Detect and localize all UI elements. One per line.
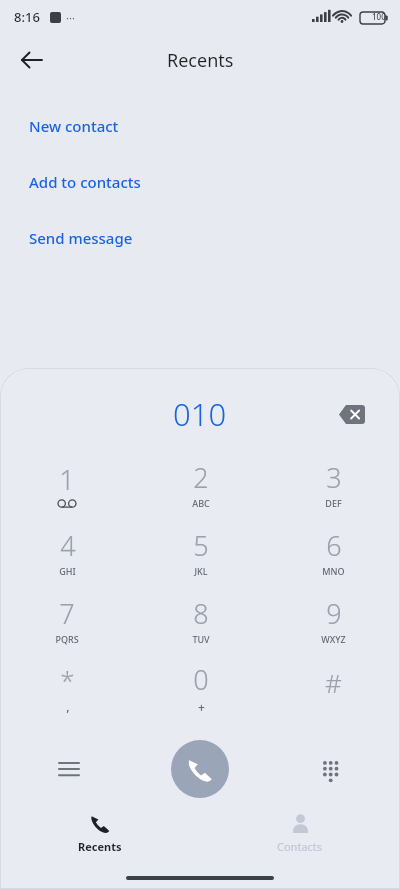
button[interactable]: 2 [134, 450, 267, 518]
staticText: ABC [192, 497, 210, 509]
staticText: New contact [29, 116, 119, 136]
staticText: Recents [78, 839, 122, 854]
staticText: JKL [194, 565, 208, 577]
staticText: 0 [193, 661, 209, 698]
staticText: , [66, 698, 70, 714]
staticText: 010 [173, 393, 227, 435]
button[interactable]: 1 [0, 450, 134, 518]
staticText: 4 [60, 527, 76, 564]
staticText: 2 [193, 459, 209, 496]
staticText: WXYZ [321, 633, 346, 645]
staticText: Contacts [277, 839, 323, 854]
button[interactable]: 3 [267, 450, 400, 518]
staticText: 9 [326, 595, 342, 632]
button[interactable]: 8 [134, 586, 267, 654]
button[interactable]: More options [46, 746, 92, 792]
button[interactable]: 0 [134, 654, 267, 722]
staticText: 7 [59, 595, 75, 632]
button[interactable]: 9 [267, 586, 400, 654]
button[interactable]: * [0, 654, 134, 722]
staticText: 5 [193, 527, 209, 564]
button[interactable]: 5 [134, 518, 267, 586]
button[interactable]: 4 [0, 518, 134, 586]
button[interactable]: 6 [267, 518, 400, 586]
button[interactable]: Call [171, 740, 229, 798]
staticText: TUV [192, 633, 210, 645]
button[interactable]: Send message [0, 224, 400, 252]
staticText: DEF [325, 497, 342, 509]
button[interactable]: Dialpad [308, 746, 354, 792]
button[interactable]: Add to contacts [0, 168, 400, 196]
staticText: 8 [193, 595, 209, 632]
staticText: Send message [29, 228, 133, 248]
staticText: + [198, 699, 205, 715]
staticText: PQRS [55, 633, 79, 645]
staticText: 8:16 [14, 8, 40, 26]
button[interactable]: Recents [0, 806, 200, 868]
button[interactable]: 7 [0, 586, 134, 654]
staticText: GHI [59, 565, 76, 577]
staticText: * [60, 662, 75, 697]
button[interactable]: # [267, 654, 400, 722]
staticText: Add to contacts [29, 172, 141, 192]
staticText: Recents [167, 48, 234, 73]
staticText: 6 [326, 527, 342, 564]
staticText: 100 [372, 11, 386, 22]
button[interactable]: Backspace [330, 392, 374, 436]
button[interactable]: Contacts [200, 806, 400, 868]
button[interactable]: Back [8, 36, 56, 84]
staticText: MNO [322, 565, 345, 577]
staticText: 1 [59, 461, 75, 498]
staticText: # [325, 665, 342, 700]
staticText: 3 [326, 459, 342, 496]
staticText: ··· [66, 10, 75, 25]
button[interactable]: New contact [0, 112, 400, 140]
